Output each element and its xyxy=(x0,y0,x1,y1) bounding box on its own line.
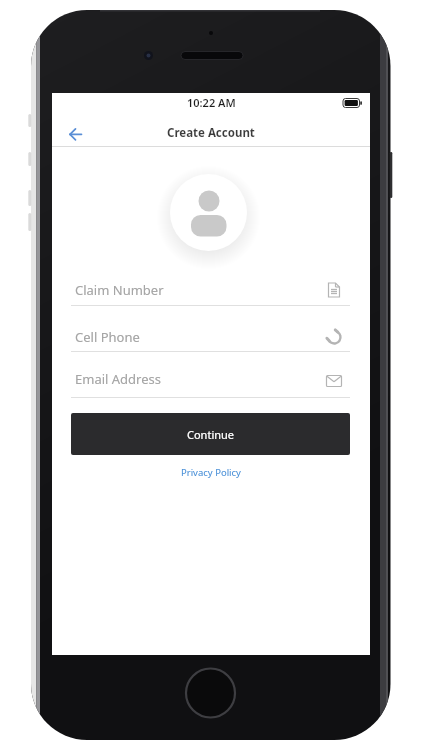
button[interactable] xyxy=(60,119,92,147)
button[interactable]: Continue xyxy=(71,413,350,455)
staticText: Email Address xyxy=(75,370,161,388)
button[interactable]: Privacy Policy xyxy=(181,466,241,479)
button[interactable]: Cell Phone xyxy=(71,320,350,354)
button[interactable]: Email Address xyxy=(71,362,350,396)
staticText: Continue xyxy=(187,427,235,442)
button[interactable]: Claim Number xyxy=(71,273,350,307)
staticText: Cell Phone xyxy=(75,328,140,346)
staticText: Privacy Policy xyxy=(181,466,241,479)
staticText: Create Account xyxy=(167,125,255,141)
staticText: 10:22 AM xyxy=(187,95,236,110)
staticText: Claim Number xyxy=(75,281,164,299)
